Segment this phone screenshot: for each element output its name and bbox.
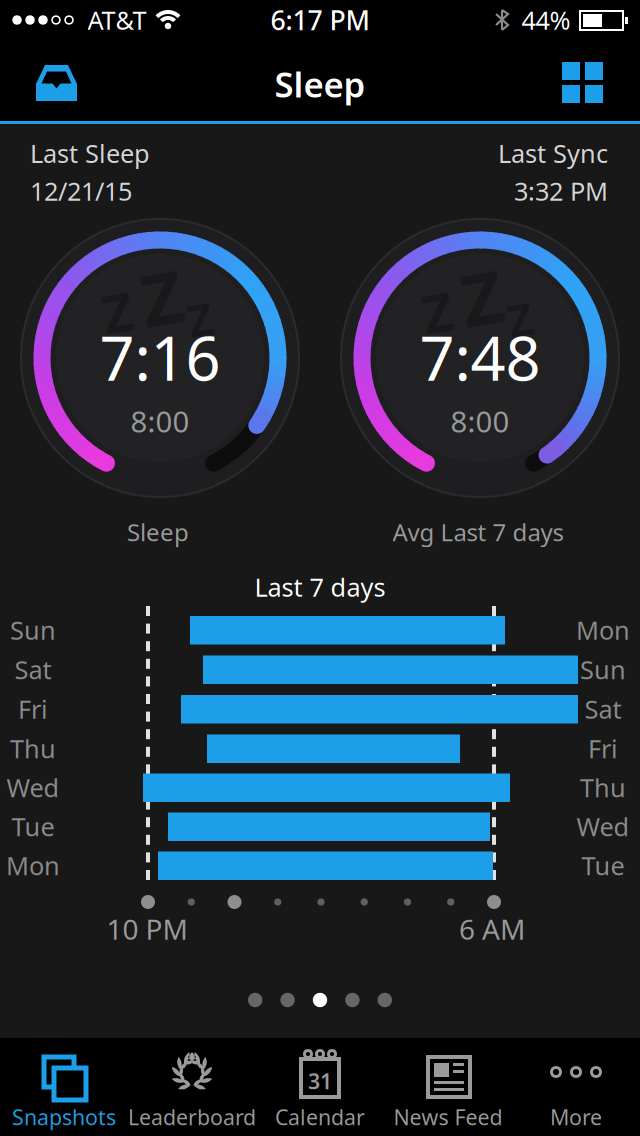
staticText: 12/21/15 (30, 174, 132, 208)
staticText: More (550, 1103, 602, 1131)
button[interactable]: More (512, 1038, 640, 1136)
staticText: Avg Last 7 days (392, 516, 563, 548)
button[interactable]: 31 (256, 1038, 384, 1136)
staticText: Leaderboard (128, 1103, 256, 1131)
staticText: Mon (576, 613, 630, 647)
staticText: Wed (576, 810, 629, 843)
staticText: Last Sleep (30, 136, 150, 170)
staticText: 8:00 (450, 401, 509, 440)
staticText: Sun (580, 653, 626, 686)
staticText: 44% (521, 3, 570, 37)
staticText: Sleep (127, 516, 189, 548)
staticText: 8:00 (130, 401, 189, 440)
staticText: Z (507, 290, 532, 348)
staticText: Tue (11, 810, 54, 843)
staticText: 7:16 (99, 316, 220, 398)
staticText: Sat (584, 692, 621, 726)
staticText: Last 7 days (254, 570, 385, 604)
staticText: 31 (308, 1067, 332, 1095)
button[interactable]: News Feed (384, 1038, 512, 1136)
staticText: 6:17 PM (270, 2, 369, 38)
staticText: Z (141, 249, 183, 345)
staticText: Fri (588, 732, 618, 765)
staticText: Tue (581, 849, 624, 882)
staticText: Sun (10, 613, 56, 647)
staticText: Calendar (275, 1103, 365, 1131)
staticText: Z (422, 277, 453, 347)
staticText: AT&T (87, 3, 146, 37)
staticText: 7:48 (419, 316, 540, 398)
staticText: Sat (14, 653, 51, 686)
staticText: Z (187, 290, 212, 348)
staticText: Fri (18, 692, 48, 726)
staticText: Wed (6, 771, 59, 804)
button[interactable]: Snapshots (0, 1038, 128, 1136)
staticText: 10 PM (106, 910, 187, 948)
staticText: Thu (10, 732, 56, 765)
staticText: Snapshots (12, 1103, 116, 1131)
staticText: 6 AM (459, 910, 525, 948)
button[interactable] (24, 51, 88, 115)
staticText: News Feed (393, 1103, 502, 1131)
staticText: Mon (6, 849, 60, 882)
staticText: 3:32 PM (514, 174, 608, 208)
staticText: Last Sync (498, 136, 608, 170)
staticText: Z (461, 249, 503, 345)
staticText: Thu (580, 771, 626, 804)
button[interactable]: Leaderboard (128, 1038, 256, 1136)
staticText: Z (102, 277, 133, 347)
staticText: Sleep (274, 61, 365, 107)
button[interactable] (554, 54, 610, 110)
